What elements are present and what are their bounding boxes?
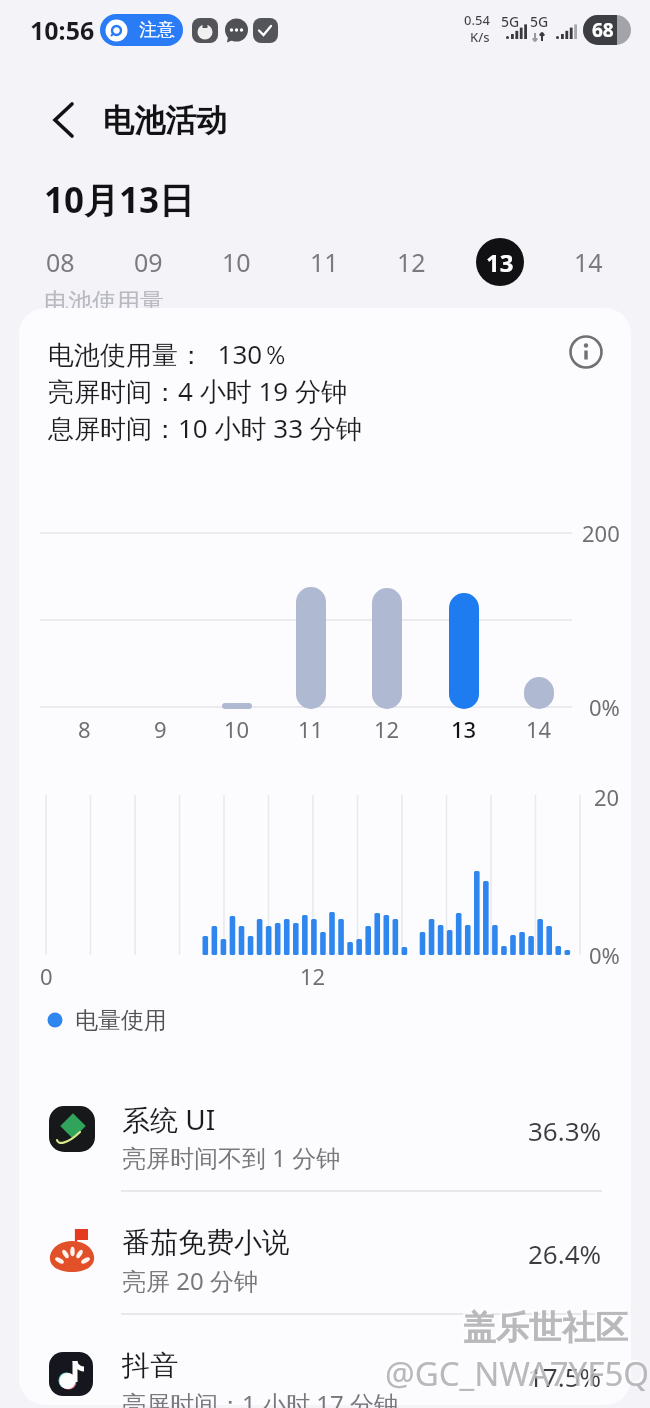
staticText: 亮屏 20 分钟 [122,1264,258,1297]
staticText: 14 [574,245,603,279]
staticText: 0% [589,940,620,970]
staticText: 抖音 [122,1348,178,1383]
staticText: 12 [374,714,400,744]
staticText: 12 [300,961,326,991]
staticText: 5G [501,12,520,30]
staticText: 13 [486,246,514,279]
staticText: 系统 UI [122,1100,216,1138]
staticText: 11 [310,245,339,279]
staticText: 9 [154,714,167,744]
button[interactable]: 13 [476,238,524,286]
staticText: 亮屏时间：4 小时 19 分钟 [48,373,347,407]
staticText: 0.54 [464,11,490,27]
button[interactable]: 09 [118,238,178,286]
staticText: @GC_NWA7YF5Q [385,1351,650,1391]
staticText: 番茄免费小说 [122,1225,290,1260]
button[interactable]: 12 [381,238,441,286]
button[interactable]: 注意 [100,14,183,46]
staticText: 息屏时间：10 小时 33 分钟 [48,410,362,444]
button[interactable] [568,334,604,370]
staticText: 10 [222,245,251,279]
staticText: 0 [40,961,53,991]
staticText: 8 [78,714,91,744]
staticText: 10 [224,714,250,744]
staticText: 08 [46,245,75,279]
staticText: 12 [397,245,426,279]
staticText: 26.4% [528,1236,602,1271]
button[interactable]: 11 [294,238,354,286]
button[interactable]: 10 [206,238,266,286]
button[interactable]: 系统 UI [19,1068,631,1191]
staticText: 电量使用 [75,1006,167,1035]
staticText: 68 [592,17,614,43]
staticText: 盖乐世社区 [461,1305,626,1345]
staticText: @GC_NWA7YF5Q [383,1349,648,1389]
button[interactable]: 抖音 [19,1314,631,1408]
button[interactable]: 番茄免费小说 [19,1191,631,1314]
staticText: 注意 [139,19,175,42]
staticText: 10月13日 [44,176,195,224]
staticText: 36.3% [528,1113,602,1148]
staticText: 电池活动 [103,101,227,140]
staticText: 亮屏时间：1 小时 17 分钟 [122,1387,398,1408]
staticText: 10:56 [30,13,95,47]
staticText: 电池使用量： 130％ [48,336,289,370]
staticText: 14 [526,714,552,744]
staticText: 17.5% [528,1359,602,1394]
staticText: 09 [134,245,163,279]
staticText: 13 [451,714,477,744]
button[interactable]: 14 [558,238,618,286]
staticText: 盖乐世社区 [463,1307,628,1347]
staticText: 0% [589,692,620,722]
staticText: 11 [298,714,324,744]
staticText: K/s [470,28,490,44]
staticText: 20 [594,782,620,812]
button[interactable]: 08 [30,238,90,286]
staticText: 200 [582,518,620,548]
staticText: 电池使用量 [44,287,164,317]
staticText: 5G [530,12,549,30]
button[interactable] [40,92,260,148]
staticText: 亮屏时间不到 1 分钟 [122,1141,341,1174]
